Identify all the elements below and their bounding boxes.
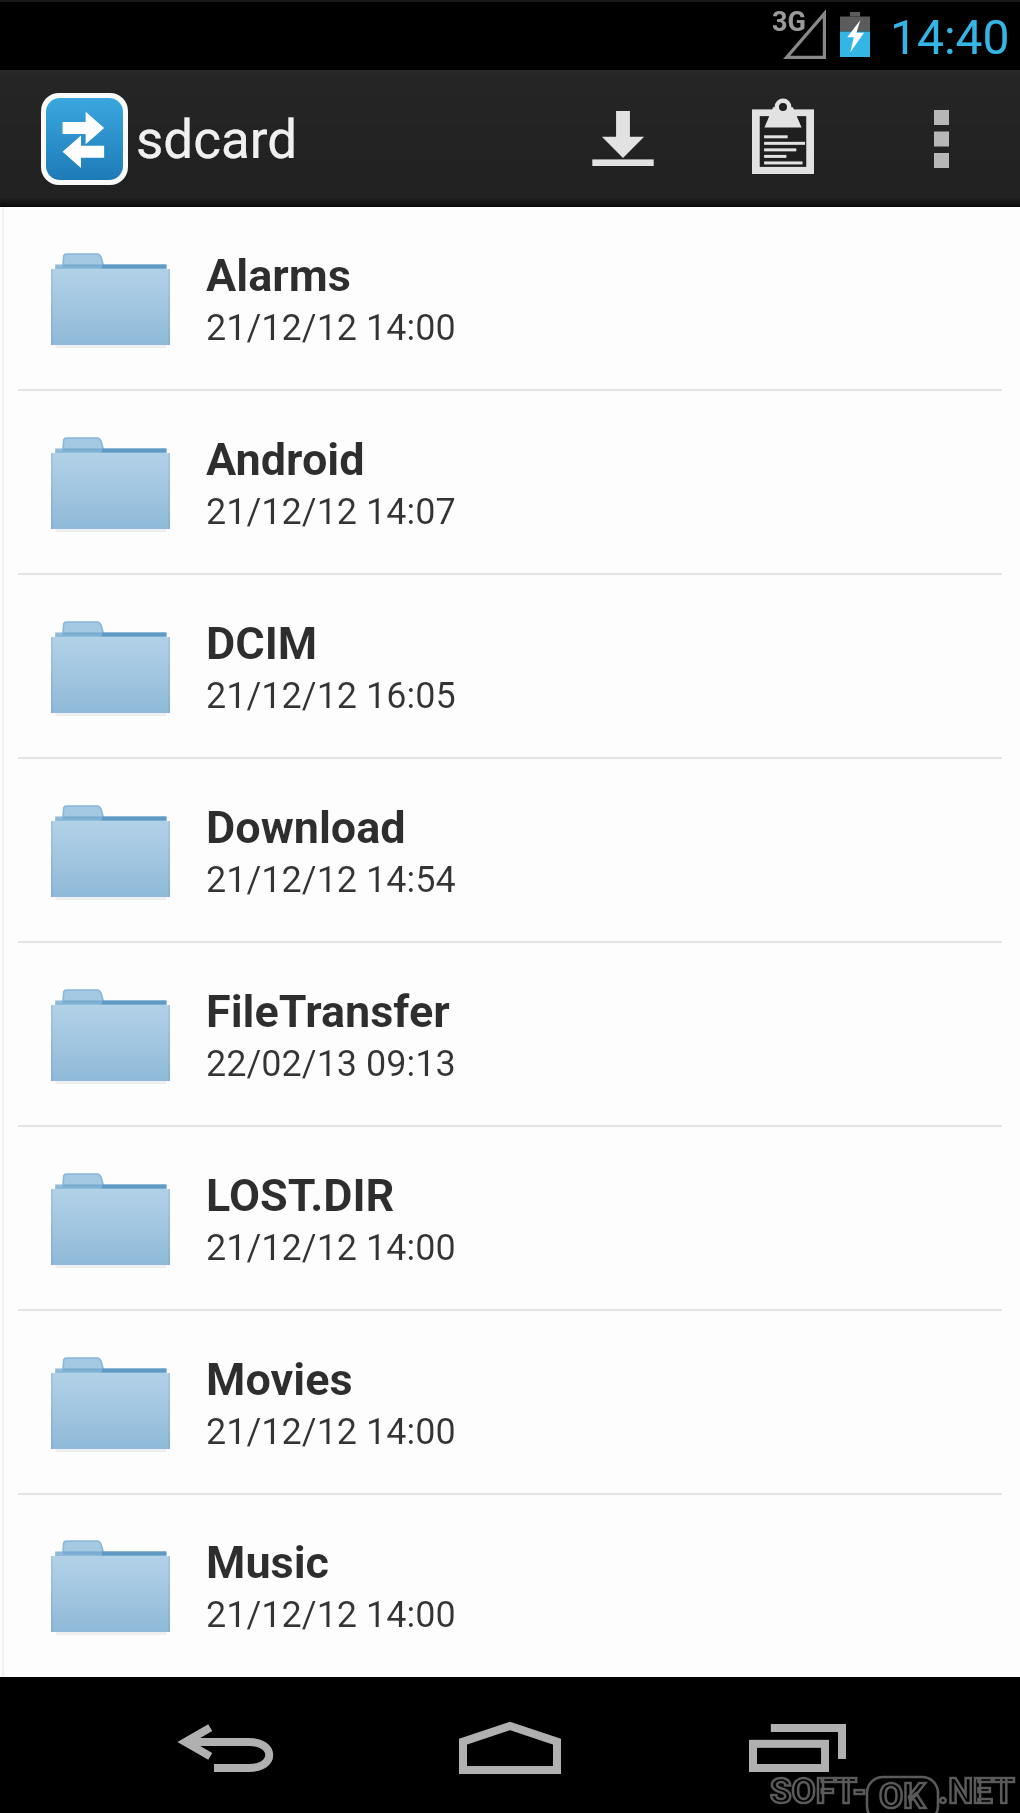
staticText: 21/12/12 14:00 <box>206 307 456 349</box>
button[interactable]: DCIM <box>0 575 1020 759</box>
staticText: FileTransfer <box>206 985 450 1038</box>
button[interactable]: Recent apps <box>683 1677 911 1813</box>
button[interactable]: Alarms <box>0 207 1020 391</box>
button[interactable]: Download <box>0 759 1020 943</box>
staticText: SOFT- <box>770 1771 867 1812</box>
staticText: sdcard <box>136 109 298 171</box>
staticText: Movies <box>206 1353 353 1406</box>
staticText: 14:40 <box>890 9 1010 65</box>
button[interactable]: sdcard <box>0 70 318 207</box>
staticText: 21/12/12 14:00 <box>206 1411 456 1453</box>
staticText: .NET <box>938 1771 1015 1812</box>
button[interactable]: Home <box>396 1677 624 1813</box>
staticText: 21/12/12 14:00 <box>206 1594 456 1636</box>
staticText: 22/02/13 09:13 <box>206 1043 456 1085</box>
button[interactable]: Android <box>0 391 1020 575</box>
button[interactable]: Paste <box>718 70 848 207</box>
staticText: Download <box>206 801 406 854</box>
staticText: DCIM <box>206 617 318 670</box>
staticText: 21/12/12 14:07 <box>206 491 456 533</box>
staticText: 21/12/12 16:05 <box>206 675 456 717</box>
button[interactable]: Download <box>558 70 688 207</box>
button[interactable]: Movies <box>0 1311 1020 1495</box>
button[interactable]: LOST.DIR <box>0 1127 1020 1311</box>
button[interactable]: Back <box>113 1677 341 1813</box>
staticText: 21/12/12 14:00 <box>206 1227 456 1269</box>
staticText: OK <box>879 1776 926 1813</box>
staticText: Android <box>206 433 365 486</box>
button[interactable]: FileTransfer <box>0 943 1020 1127</box>
staticText: Music <box>206 1536 330 1589</box>
staticText: LOST.DIR <box>206 1169 395 1222</box>
staticText: Alarms <box>206 249 351 302</box>
button[interactable]: More options <box>862 70 1020 207</box>
button[interactable]: Music <box>0 1495 1020 1677</box>
staticText: 3G <box>772 6 806 38</box>
staticText: 21/12/12 14:54 <box>206 859 456 901</box>
